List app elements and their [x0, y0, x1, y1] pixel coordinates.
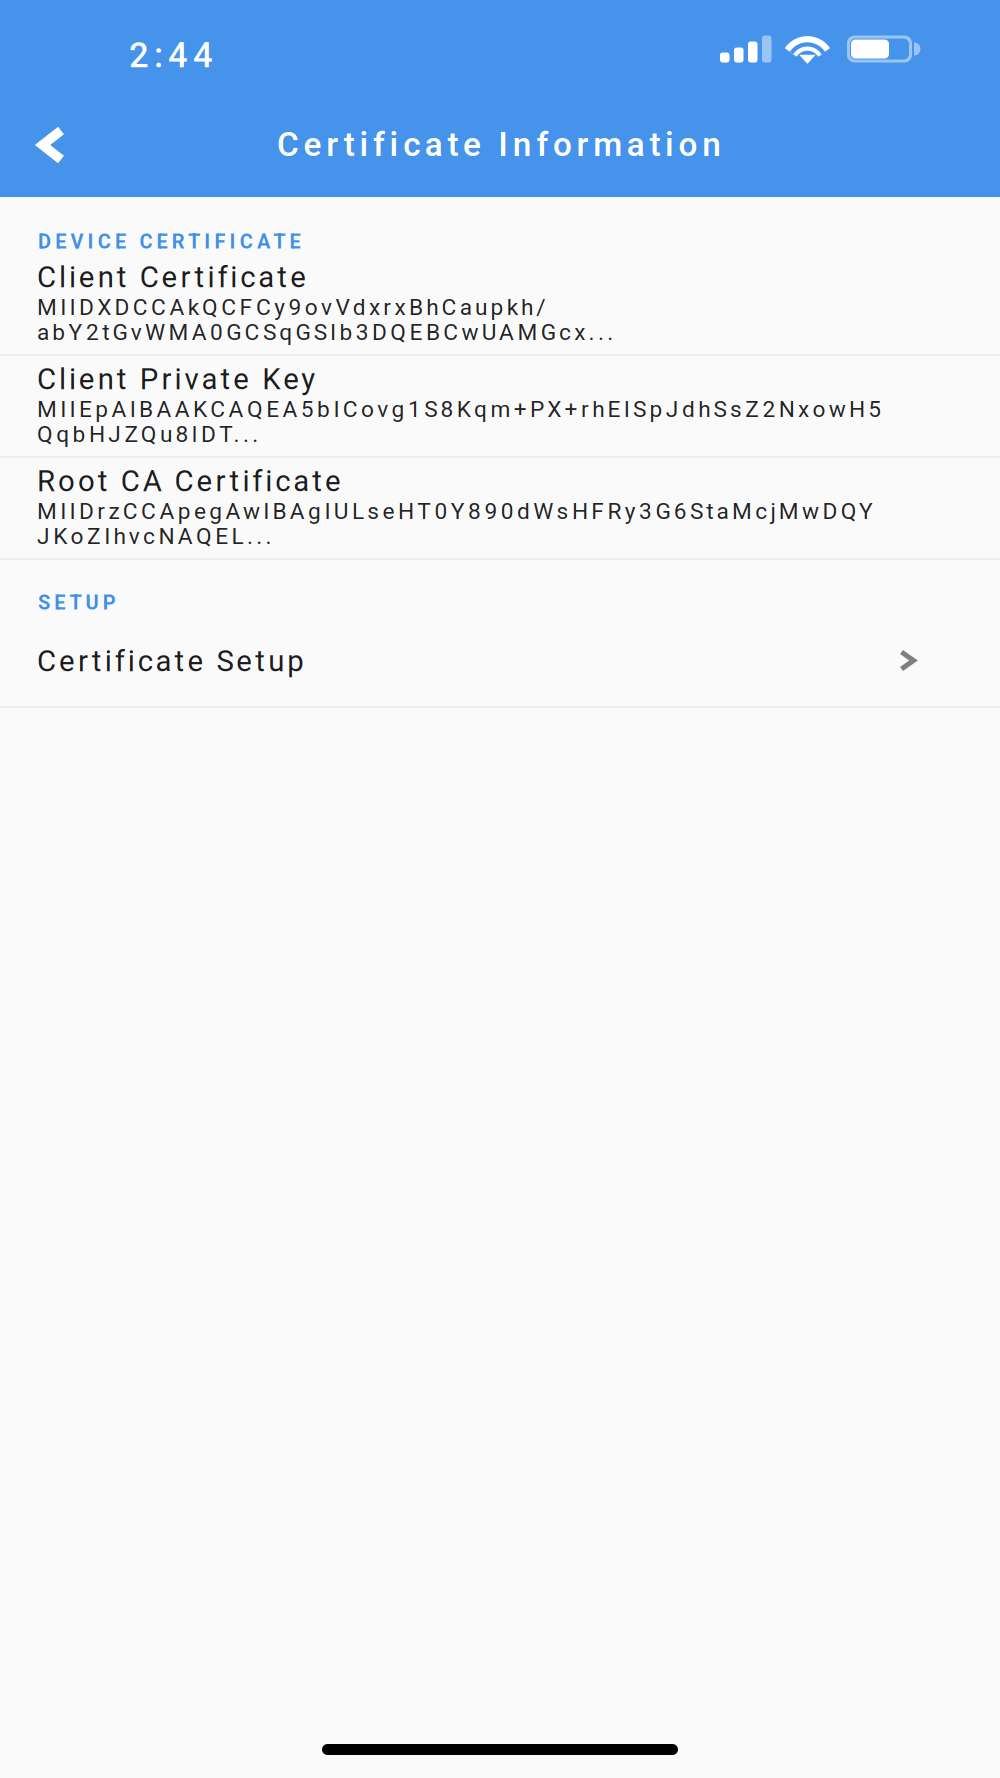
staticText: QqbHJZQu8lDT...	[37, 421, 297, 443]
button[interactable]: Root CA Certificate	[0, 458, 1000, 558]
staticText: Client Certificate	[37, 260, 337, 286]
button[interactable]: Client Private Key	[0, 356, 1000, 456]
staticText: Certificate Setup	[37, 644, 317, 670]
staticText: SETUP	[38, 591, 158, 611]
staticText: Client Private Key	[37, 362, 347, 388]
button[interactable]: Back	[2, 95, 102, 195]
staticText: MIIDXDCCAkQCFCy9ovVdxrxBhCaupkh/	[37, 294, 597, 316]
button[interactable]: Certificate Setup	[0, 615, 1000, 706]
staticText: DEVICE CERTIFICATE	[38, 230, 338, 250]
staticText: Root CA Certificate	[37, 464, 367, 490]
staticText: MIIEpAIBAAKCAQEA5bICovg1S8Kqm+PX+rhEISpJ…	[37, 396, 927, 418]
button[interactable]: Client Certificate	[0, 254, 1000, 354]
staticText: 2:44	[129, 35, 329, 65]
staticText: MIIDrzCCApegAwIBAgIULseHT0Y890dWsHFRy3G6…	[37, 498, 917, 520]
staticText: abY2tGvWMA0GCSqGSIb3DQEBCwUAMGcx...	[37, 319, 657, 341]
staticText: Certificate Information	[277, 125, 723, 159]
staticText: JKoZIhvcNAQEL...	[37, 523, 307, 545]
